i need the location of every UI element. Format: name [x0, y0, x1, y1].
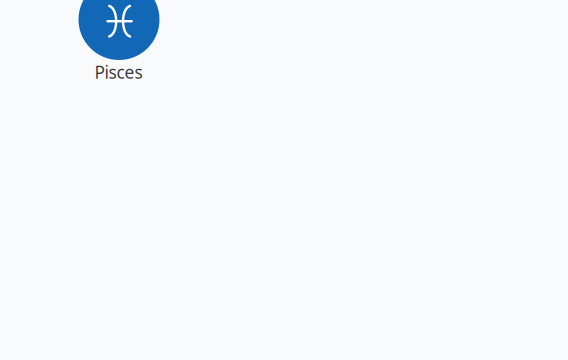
button[interactable]: Pisces — [78, 0, 159, 83]
staticText: Pisces — [94, 60, 142, 83]
